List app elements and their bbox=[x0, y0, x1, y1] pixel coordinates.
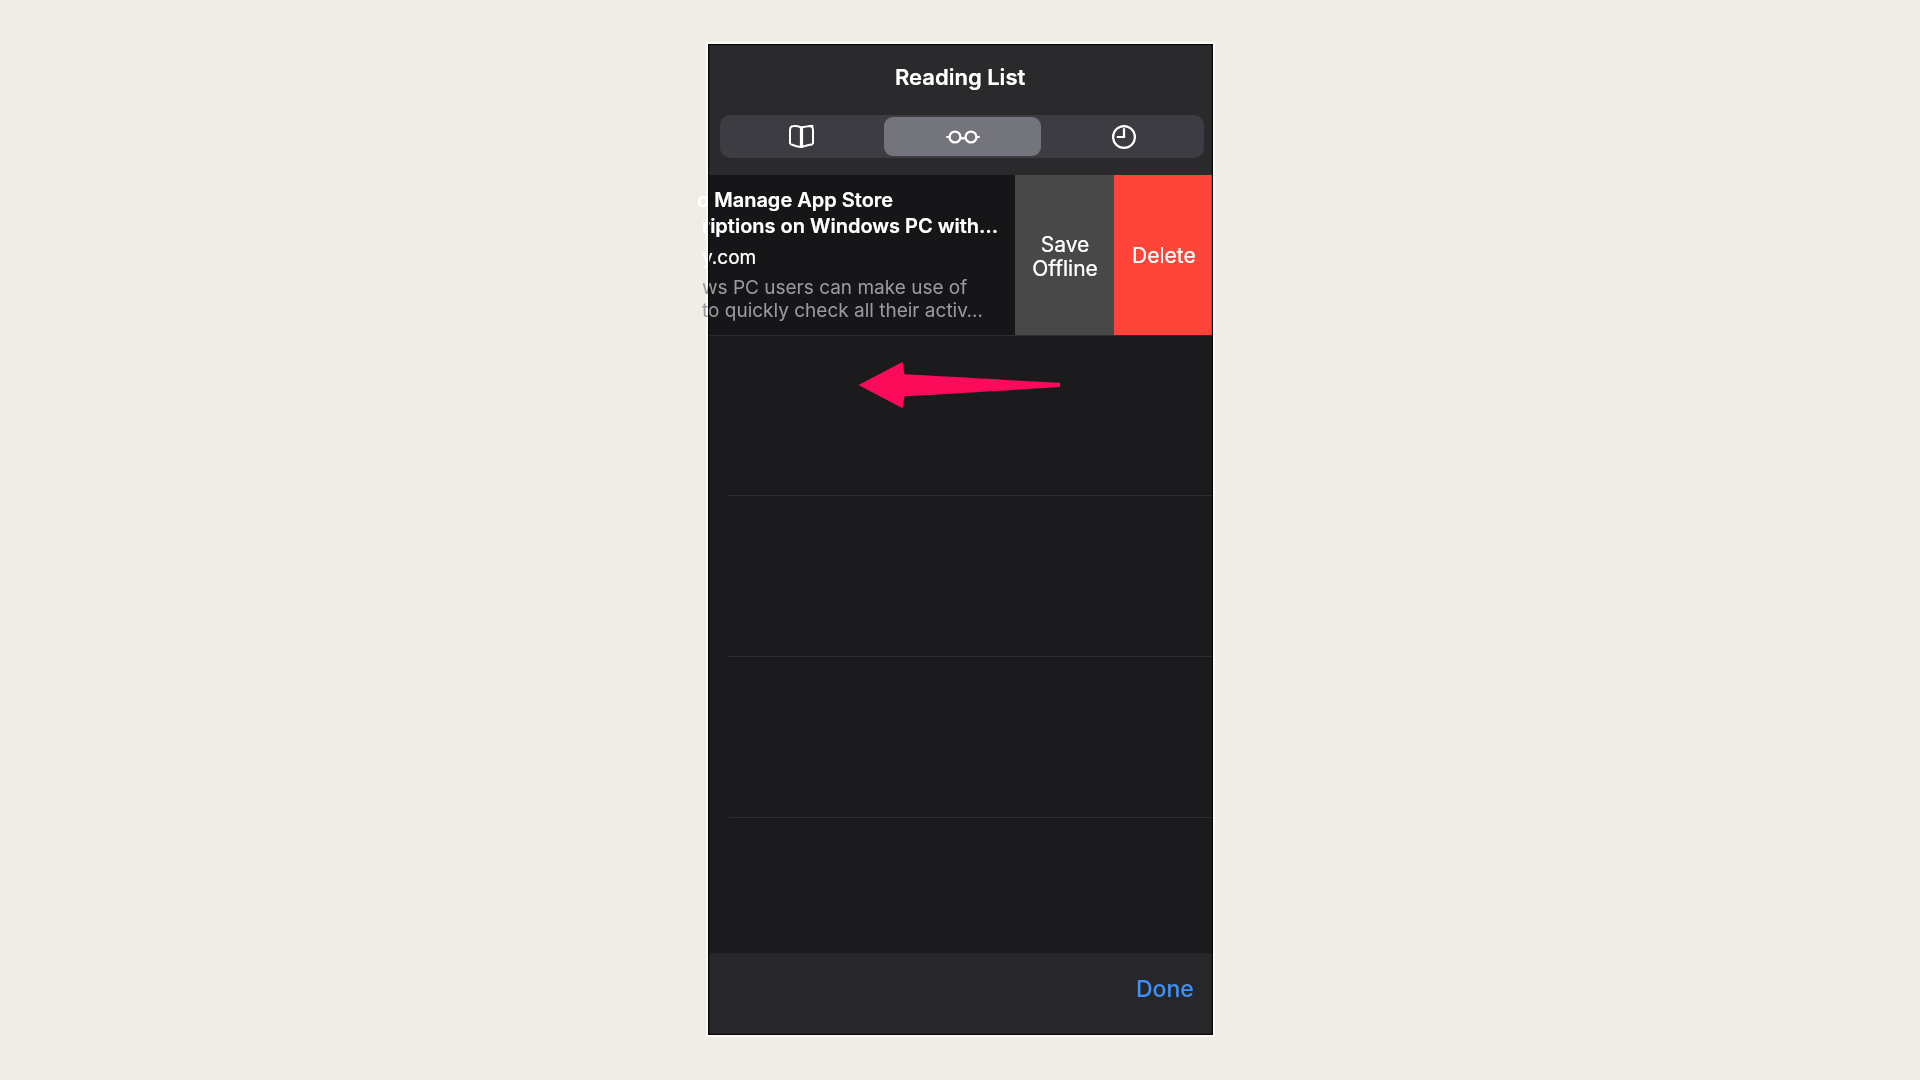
button[interactable]: o Manage App Store bbox=[708, 175, 1015, 335]
staticText: Delete bbox=[1132, 243, 1196, 268]
staticText: ws PC users can make use of bbox=[702, 276, 968, 299]
staticText: Reading List bbox=[895, 64, 1026, 91]
button[interactable]: Library bbox=[722, 117, 880, 156]
staticText: riptions on Windows PC with… bbox=[702, 214, 999, 238]
staticText: y.com bbox=[702, 246, 757, 269]
staticText: Save Offline bbox=[1032, 232, 1098, 281]
staticText: o Manage App Store bbox=[697, 188, 894, 212]
staticText: Done bbox=[1136, 975, 1194, 1003]
button[interactable]: Reading List bbox=[884, 117, 1041, 156]
button[interactable]: Save Offline bbox=[1015, 175, 1114, 335]
button[interactable]: Done bbox=[1112, 953, 1213, 1032]
button[interactable]: Delete bbox=[1114, 175, 1213, 335]
staticText: to quickly check all their activ… bbox=[702, 299, 983, 322]
button[interactable]: History bbox=[1045, 117, 1202, 156]
